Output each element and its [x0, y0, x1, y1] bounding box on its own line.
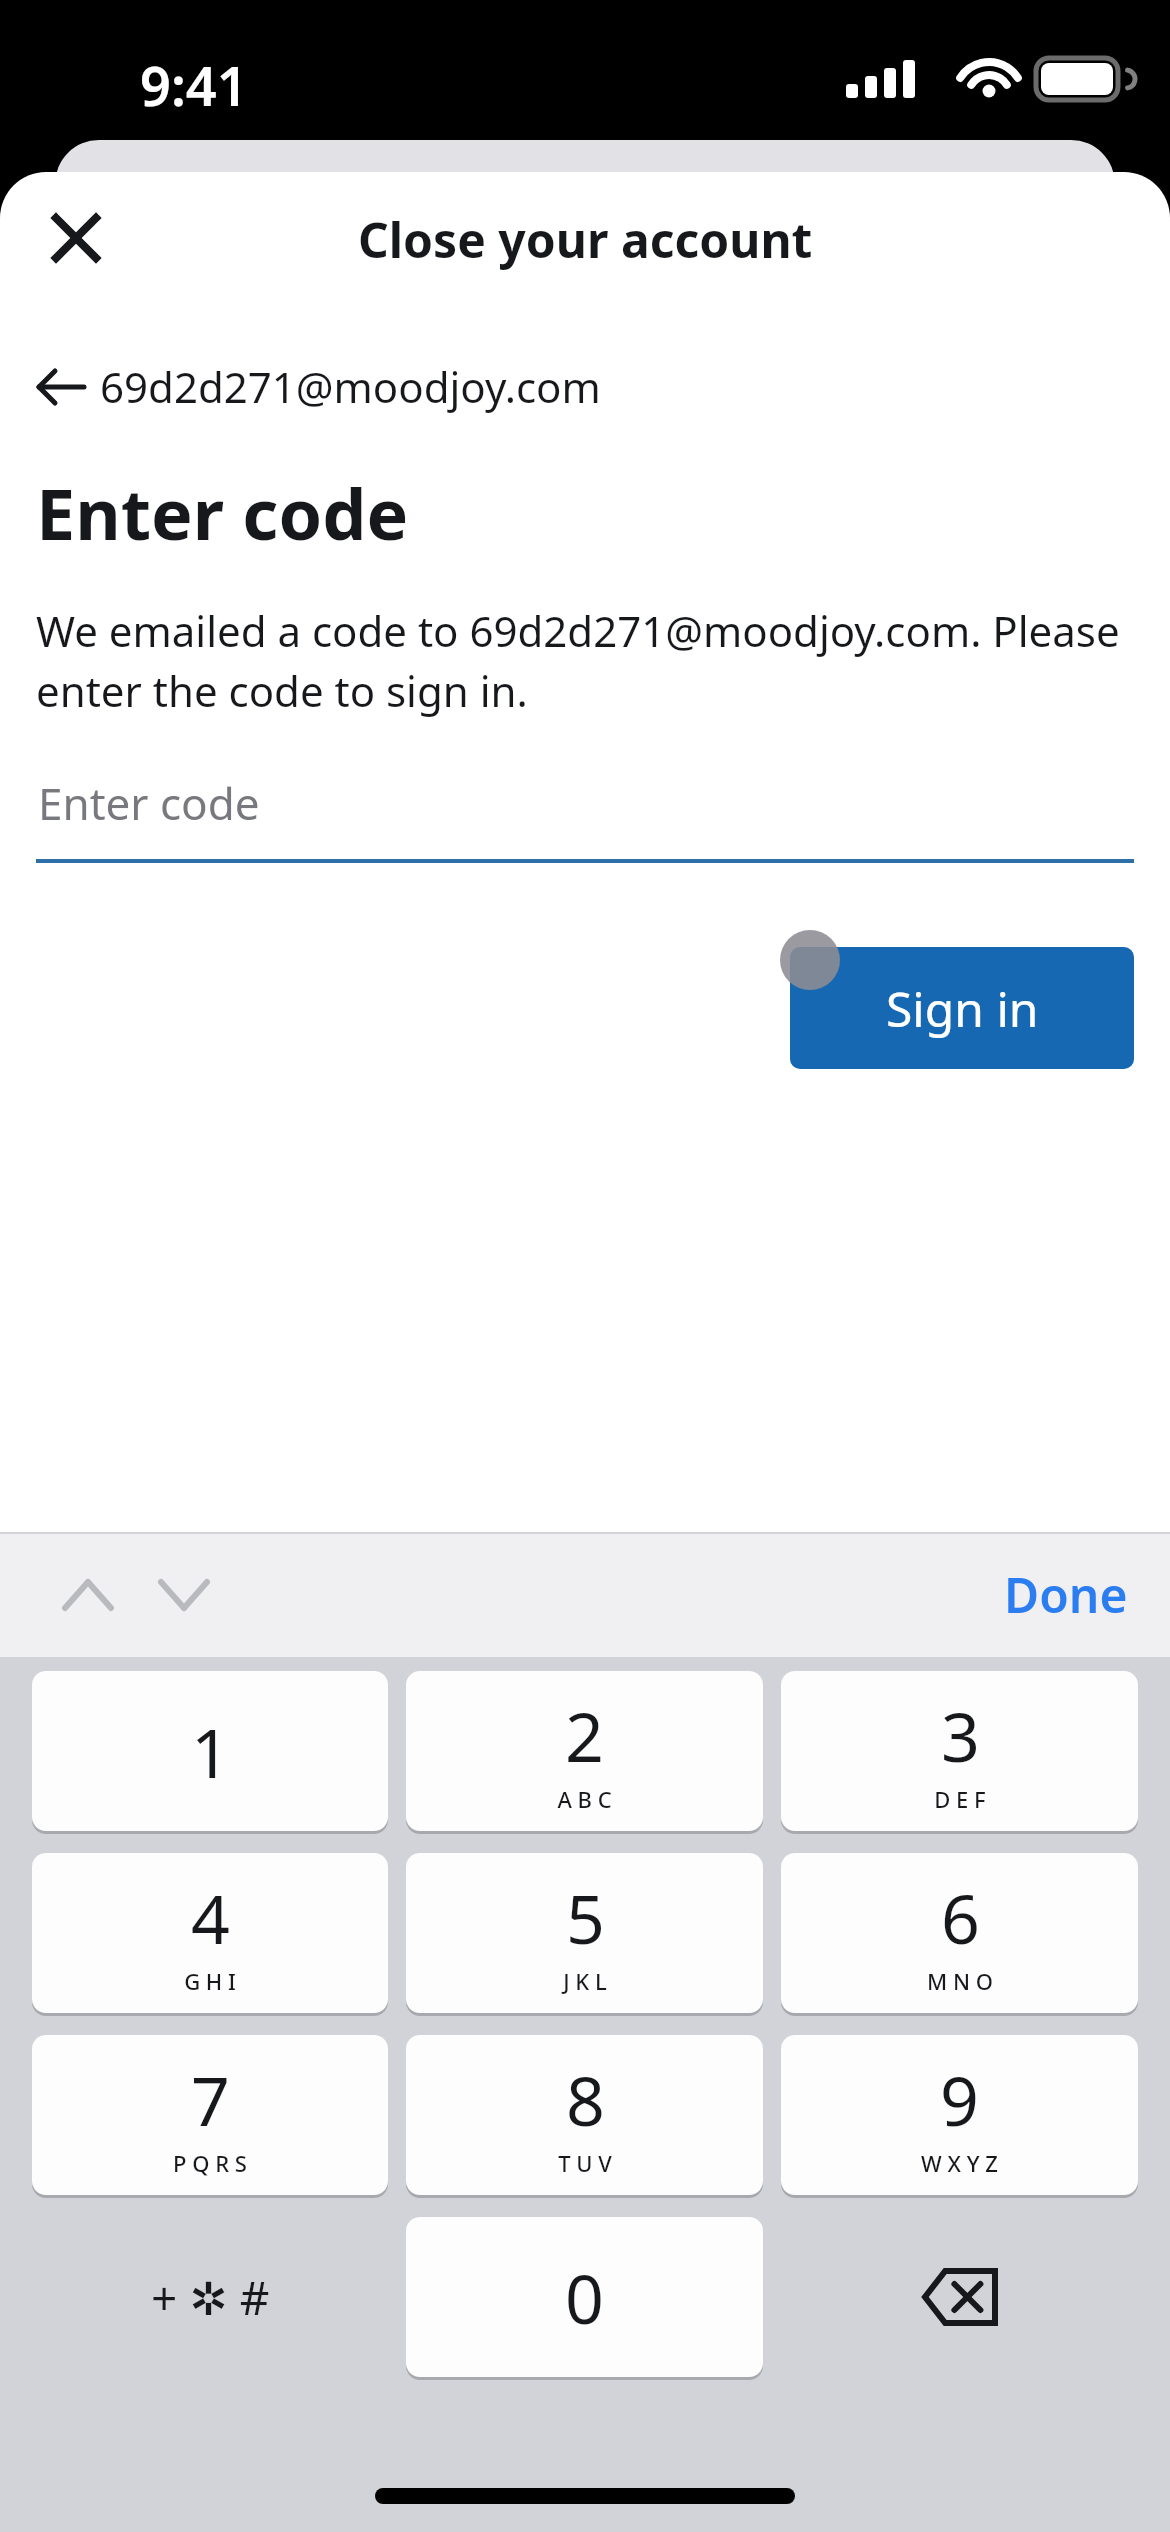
staticText: 8 — [566, 2053, 605, 2146]
staticText: 4 — [191, 1871, 230, 1964]
staticText: W X Y Z — [921, 2148, 998, 2178]
button[interactable]: Next field — [136, 1547, 232, 1643]
staticText: Close your account — [358, 207, 813, 272]
button[interactable]: 2 — [406, 1671, 763, 1831]
button[interactable]: 1 — [32, 1671, 388, 1831]
staticText: 3 — [941, 1689, 980, 1782]
button[interactable]: 69d2d271@moodjoy.com — [36, 350, 601, 423]
button[interactable]: 0 — [406, 2217, 763, 2377]
button[interactable]: 8 — [406, 2035, 763, 2195]
button[interactable]: Close — [28, 190, 124, 286]
staticText: D E F — [934, 1784, 986, 1814]
button[interactable]: Enter code — [36, 773, 1134, 863]
staticText: M N O — [927, 1966, 993, 1996]
staticText: P Q R S — [173, 2148, 247, 2178]
button[interactable]: 3 — [781, 1671, 1138, 1831]
staticText: 7 — [191, 2053, 230, 2146]
staticText: G H I — [184, 1966, 236, 1996]
staticText: T U V — [558, 2148, 612, 2178]
staticText: + ✲ # — [151, 2266, 270, 2329]
button[interactable]: Done — [984, 1546, 1148, 1643]
button[interactable]: Plus star hash — [32, 2217, 388, 2377]
staticText: 0 — [565, 2251, 604, 2344]
staticText: 9 — [940, 2053, 979, 2146]
button[interactable]: 5 — [406, 1853, 763, 2013]
button[interactable]: Sign in — [790, 947, 1134, 1069]
staticText: We emailed a code to 69d2d271@moodjoy.co… — [36, 602, 1134, 719]
staticText: 1 — [191, 1705, 230, 1798]
staticText: Sign in — [886, 976, 1039, 1041]
staticText: 69d2d271@moodjoy.com — [100, 358, 601, 415]
staticText: Done — [1004, 1562, 1128, 1627]
staticText: J K L — [563, 1966, 607, 1996]
staticText: 6 — [941, 1871, 980, 1964]
staticText: A B C — [557, 1784, 612, 1814]
button[interactable]: 7 — [32, 2035, 388, 2195]
staticText: Enter code — [36, 465, 409, 560]
staticText: 2 — [565, 1689, 604, 1782]
button[interactable]: 4 — [32, 1853, 388, 2013]
button[interactable]: 9 — [781, 2035, 1138, 2195]
staticText: Enter code — [38, 773, 260, 833]
staticText: 5 — [566, 1871, 605, 1964]
button[interactable]: Previous field — [40, 1547, 136, 1643]
button[interactable]: Backspace — [781, 2217, 1138, 2377]
button[interactable]: 6 — [781, 1853, 1138, 2013]
staticText: 9:41 — [140, 48, 248, 122]
